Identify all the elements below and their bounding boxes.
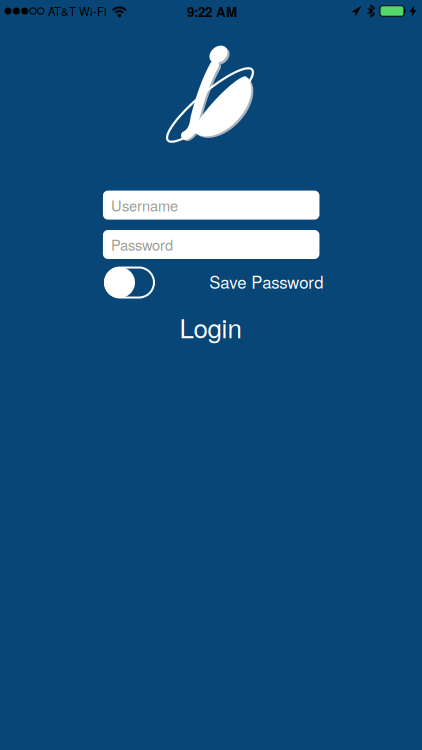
staticText: Save Password — [209, 270, 323, 293]
textField[interactable]: Username — [111, 195, 319, 216]
staticText: Login — [180, 308, 242, 346]
staticText: AT&T Wi-Fi — [48, 3, 107, 19]
staticText: 9:22 AM — [187, 2, 237, 21]
secureTextField[interactable]: Password — [111, 234, 319, 255]
staticText: Password — [111, 234, 173, 255]
staticText: Username — [111, 195, 178, 216]
button[interactable]: Login — [180, 308, 242, 346]
button[interactable]: Save Password — [104, 267, 154, 298]
